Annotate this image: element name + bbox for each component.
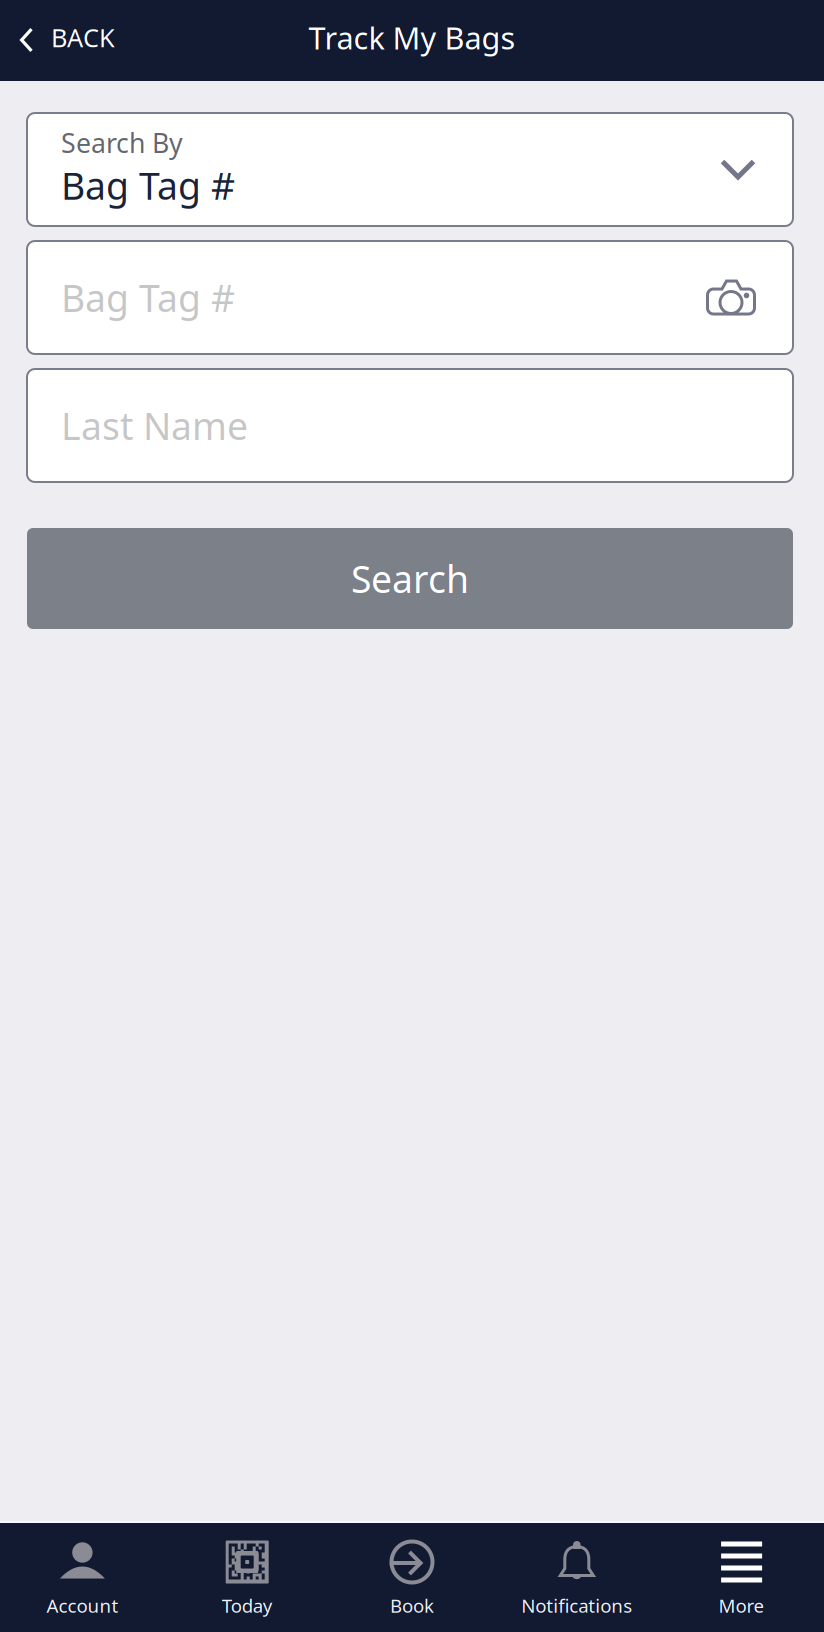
staticText: BACK <box>51 21 115 54</box>
button[interactable]: More <box>659 1523 824 1632</box>
button[interactable]: Account <box>0 1523 165 1632</box>
staticText: Search <box>351 554 469 603</box>
staticText: Notifications <box>521 1593 632 1618</box>
staticText: More <box>719 1593 765 1618</box>
staticText: Bag Tag # <box>61 273 235 322</box>
staticText: Account <box>46 1593 118 1618</box>
button[interactable]: Scan bag tag <box>706 278 756 316</box>
staticText: Search By <box>61 125 183 160</box>
staticText: Today <box>222 1593 273 1618</box>
button[interactable]: BACK <box>0 9 133 72</box>
staticText: Last Name <box>61 401 248 450</box>
staticText: Bag Tag # <box>61 160 235 210</box>
staticText: Track My Bags <box>308 17 515 58</box>
button[interactable]: Search <box>0 528 824 629</box>
button[interactable]: Book <box>330 1523 494 1632</box>
button[interactable]: Search By <box>0 113 824 226</box>
button[interactable]: Notifications <box>494 1523 659 1632</box>
button[interactable]: Today <box>165 1523 330 1632</box>
staticText: Book <box>390 1593 434 1618</box>
